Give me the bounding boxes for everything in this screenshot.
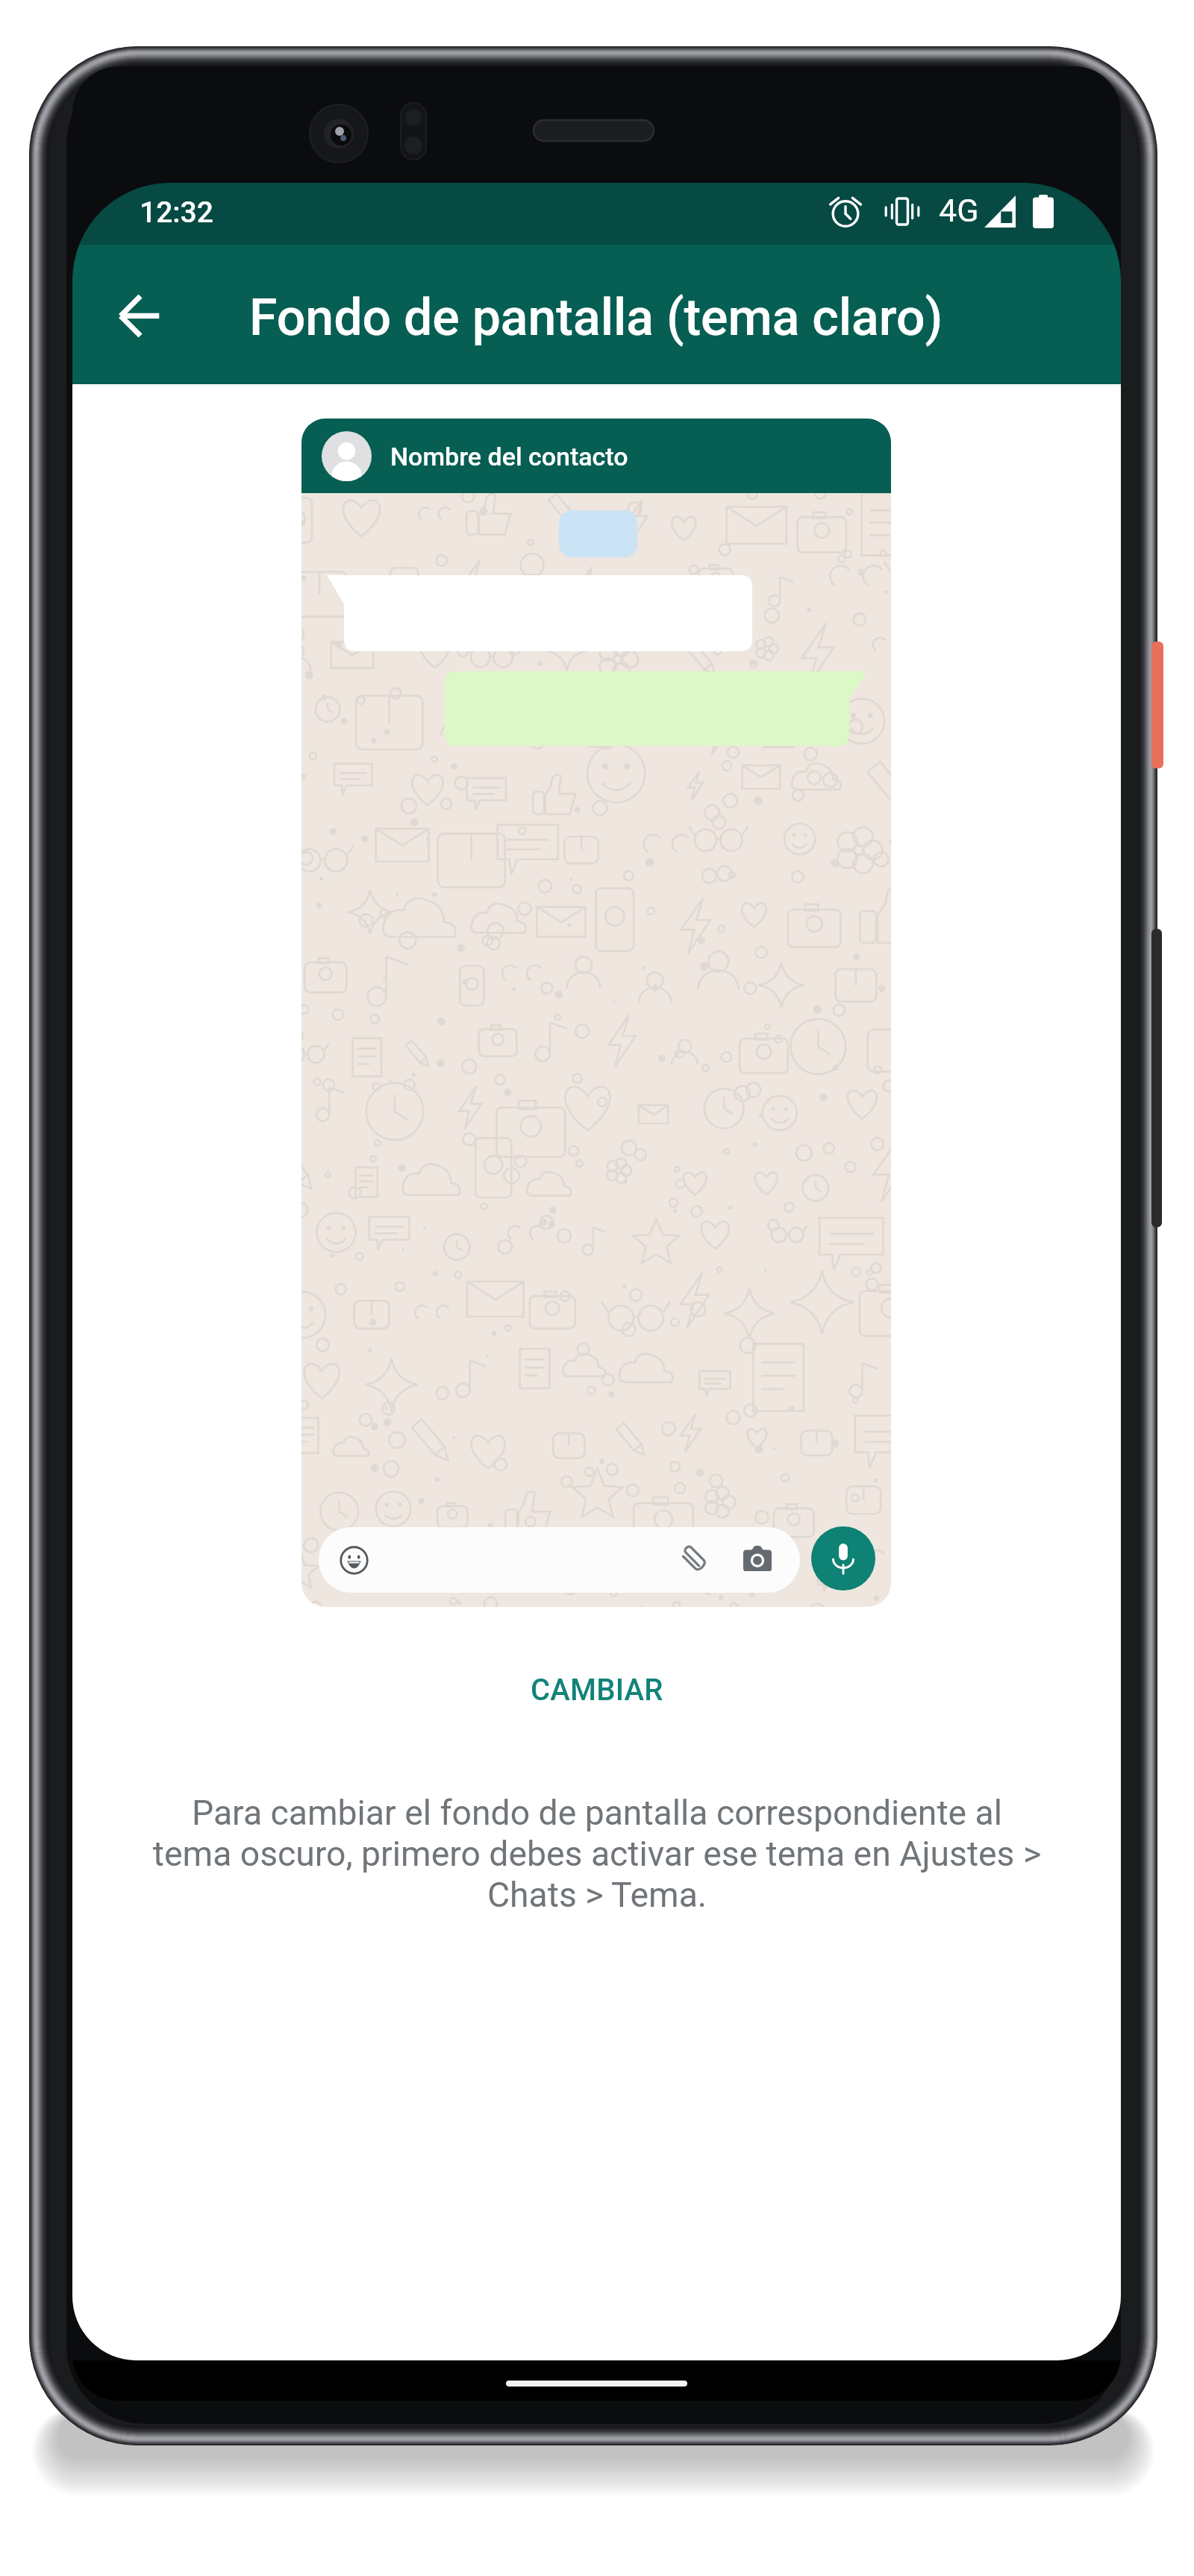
staticText: Nombre del contacto [390, 442, 628, 471]
staticText: Fondo de pantalla (tema claro) [249, 288, 943, 348]
staticText: 12:32 [140, 195, 213, 230]
other: Attach [680, 1546, 708, 1572]
staticText: 4G [939, 192, 979, 229]
button[interactable]: Voice message [811, 1526, 875, 1591]
other: Camera [743, 1546, 772, 1571]
staticText: CAMBIAR [531, 1673, 663, 1708]
staticText: Para cambiar el fondo de pantalla corres… [152, 1793, 1042, 1915]
button[interactable]: Back [93, 269, 185, 361]
button[interactable]: CAMBIAR [505, 1661, 689, 1720]
button[interactable]: Emoji [319, 1527, 800, 1593]
other: Emoji [340, 1546, 369, 1575]
